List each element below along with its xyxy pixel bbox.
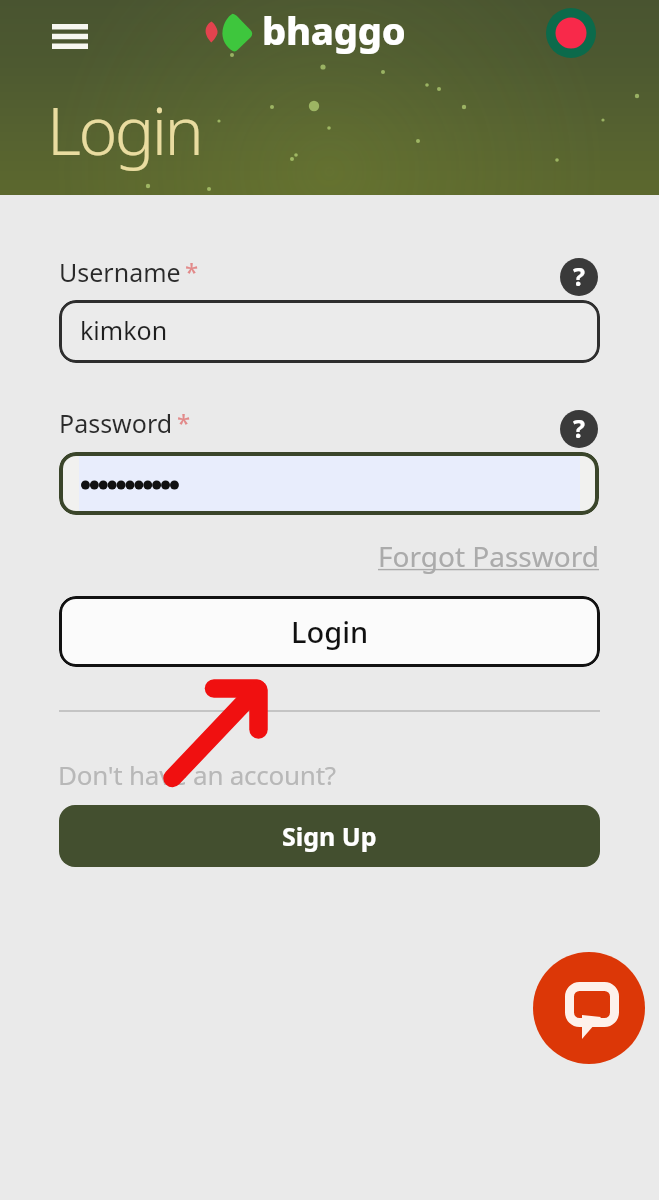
button[interactable]: Sign Up (59, 805, 600, 867)
staticText: Username (59, 255, 181, 289)
staticText: Password (59, 406, 173, 440)
staticText: Forgot Password (378, 537, 599, 575)
button[interactable]: Menu (44, 13, 96, 57)
button[interactable]: Chat support (533, 952, 645, 1064)
staticText: Sign Up (282, 819, 377, 853)
button[interactable] (59, 452, 599, 515)
staticText: kimkon (80, 313, 168, 347)
button[interactable]: Help (560, 410, 598, 448)
button[interactable]: bhaggo (262, 4, 406, 56)
staticText: ? (573, 259, 585, 293)
staticText: * (185, 255, 199, 288)
staticText: Don't have an account? (58, 757, 336, 792)
staticText: Login (291, 612, 369, 651)
button[interactable]: Forgot Password (378, 537, 599, 575)
staticText: ? (573, 411, 585, 445)
button[interactable]: bhaggo logo (202, 12, 254, 54)
button[interactable]: Login (59, 596, 600, 667)
button[interactable]: Help (560, 258, 598, 296)
staticText: Login (47, 84, 202, 174)
button[interactable]: kimkon (59, 300, 600, 363)
button[interactable]: Language (542, 4, 600, 62)
staticText: * (177, 406, 191, 439)
